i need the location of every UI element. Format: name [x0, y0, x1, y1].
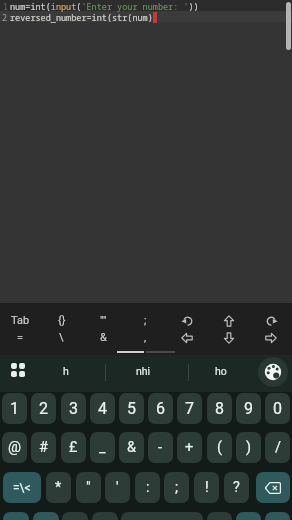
button[interactable]: 8: [207, 393, 232, 424]
staticText: 1: [3, 1, 9, 13]
staticText: (: [217, 439, 222, 456]
button[interactable]: \: [41, 328, 82, 347]
button[interactable]: ;: [164, 472, 189, 503]
button[interactable]: [250, 328, 292, 347]
button[interactable]: :: [135, 472, 160, 503]
staticText: &: [127, 439, 137, 456]
staticText: 2: [39, 399, 48, 418]
staticText: Tab: [11, 314, 30, 327]
staticText: ?: [233, 479, 240, 496]
button[interactable]: &: [82, 328, 124, 347]
staticText: -: [158, 439, 163, 456]
button[interactable]: =\<: [3, 472, 41, 503]
button[interactable]: [11, 363, 27, 379]
button[interactable]: 2: [31, 393, 56, 424]
staticText: h: [63, 365, 69, 377]
button[interactable]: 9: [236, 393, 261, 424]
staticText: #: [39, 439, 48, 456]
staticText: &: [100, 331, 107, 344]
button[interactable]: {}: [41, 311, 82, 330]
button[interactable]: [166, 328, 208, 347]
staticText: ,: [144, 331, 147, 344]
button[interactable]: [256, 472, 290, 503]
button[interactable]: @: [2, 432, 27, 463]
button[interactable]: /: [265, 432, 290, 463]
staticText: :: [146, 479, 150, 496]
button[interactable]: _: [90, 432, 115, 463]
staticText: ': [116, 479, 119, 496]
button[interactable]: #: [31, 432, 56, 463]
staticText: £: [69, 439, 78, 456]
staticText: {}: [58, 314, 66, 327]
button[interactable]: 4: [90, 393, 115, 424]
button[interactable]: [250, 311, 292, 330]
staticText: 9: [244, 399, 253, 418]
button[interactable]: ?: [224, 472, 249, 503]
button[interactable]: [258, 357, 288, 387]
button[interactable]: [166, 311, 208, 330]
staticText: 7: [185, 399, 194, 418]
button[interactable]: [92, 512, 118, 520]
staticText: _: [99, 439, 106, 456]
button[interactable]: 1: [2, 393, 27, 424]
button[interactable]: [208, 328, 250, 347]
button[interactable]: ho: [190, 355, 252, 386]
button[interactable]: ;: [124, 311, 166, 330]
button[interactable]: 5: [119, 393, 144, 424]
staticText: 2: [2, 12, 8, 24]
button[interactable]: [207, 512, 232, 520]
staticText: +: [185, 439, 194, 456]
staticText: ;: [175, 479, 179, 496]
button[interactable]: &: [119, 432, 144, 463]
button[interactable]: 0: [265, 393, 290, 424]
staticText: =\<: [13, 481, 31, 495]
staticText: 1: [10, 399, 19, 418]
button[interactable]: [236, 512, 261, 520]
button[interactable]: [62, 512, 88, 520]
staticText: 3: [69, 399, 78, 418]
staticText: "": [100, 314, 107, 327]
staticText: @: [8, 439, 22, 456]
button[interactable]: £: [61, 432, 86, 463]
staticText: ): [246, 439, 252, 456]
button[interactable]: *: [46, 472, 71, 503]
button[interactable]: [265, 512, 290, 520]
button[interactable]: ): [236, 432, 261, 463]
button[interactable]: !: [194, 472, 219, 503]
staticText: *: [55, 479, 62, 496]
button[interactable]: 3: [61, 393, 86, 424]
button[interactable]: ": [76, 472, 101, 503]
button[interactable]: (: [207, 432, 232, 463]
staticText: ": [86, 479, 91, 496]
button[interactable]: ,: [124, 328, 166, 347]
staticText: \: [59, 331, 64, 344]
button[interactable]: ': [105, 472, 130, 503]
staticText: 4: [98, 399, 107, 418]
staticText: ho: [215, 365, 227, 377]
staticText: nhi: [136, 365, 151, 377]
button[interactable]: [33, 512, 59, 520]
button[interactable]: =: [0, 328, 41, 347]
button[interactable]: Tab: [0, 311, 41, 330]
staticText: !: [205, 479, 209, 496]
button[interactable]: +: [177, 432, 202, 463]
staticText: reversed_number=int(str(num): [10, 12, 153, 24]
button[interactable]: "": [82, 311, 124, 330]
button[interactable]: h: [35, 355, 97, 386]
button[interactable]: [121, 512, 203, 520]
button[interactable]: -: [148, 432, 173, 463]
button[interactable]: 1: [0, 0, 292, 303]
button[interactable]: [208, 311, 250, 330]
button[interactable]: 7: [177, 393, 202, 424]
staticText: num=int(input('Enter your number: ')): [10, 1, 199, 13]
staticText: 6: [156, 399, 165, 418]
staticText: ;: [144, 314, 147, 327]
staticText: 5: [127, 399, 136, 418]
staticText: /: [275, 439, 281, 456]
button[interactable]: [3, 512, 29, 520]
staticText: =: [17, 331, 24, 344]
staticText: 8: [215, 399, 224, 418]
staticText: 0: [273, 399, 282, 418]
button[interactable]: 6: [148, 393, 173, 424]
button[interactable]: nhi: [106, 355, 180, 386]
